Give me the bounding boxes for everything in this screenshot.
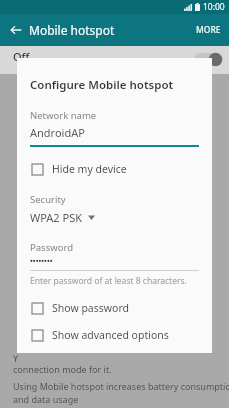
- staticText: Mobile hotspot: [29, 22, 115, 38]
- staticText: Off: [13, 49, 30, 64]
- staticText: Hide my device: [52, 162, 127, 176]
- staticText: WPA2 PSK: [30, 210, 83, 225]
- staticText: ••••••••: [30, 256, 53, 266]
- button[interactable]: WPA2 PSK: [17, 209, 95, 226]
- staticText: Enter password of at least 8 characters.: [30, 275, 187, 287]
- staticText: Using Mobile hotspot increases battery c…: [13, 380, 229, 392]
- staticText: connection mode for it.: [13, 363, 112, 375]
- staticText: Show password: [52, 301, 129, 315]
- staticText: 10:00: [203, 1, 225, 13]
- button[interactable]: Show advanced options: [17, 325, 212, 345]
- staticText: Y: [13, 352, 19, 364]
- button[interactable]: Hide my device: [17, 159, 212, 179]
- button[interactable]: Navigate up: [5, 19, 27, 41]
- staticText: AndroidAP: [30, 125, 85, 140]
- button[interactable]: Show password: [17, 298, 212, 318]
- button[interactable]: MORE: [192, 18, 225, 42]
- staticText: MORE: [196, 24, 221, 36]
- staticText: Configure Mobile hotspot: [30, 77, 174, 93]
- staticText: and data usage: [13, 393, 79, 405]
- staticText: Password: [30, 241, 73, 254]
- staticText: Security: [30, 193, 66, 206]
- staticText: Show advanced options: [52, 328, 169, 342]
- staticText: Network name: [30, 109, 97, 122]
